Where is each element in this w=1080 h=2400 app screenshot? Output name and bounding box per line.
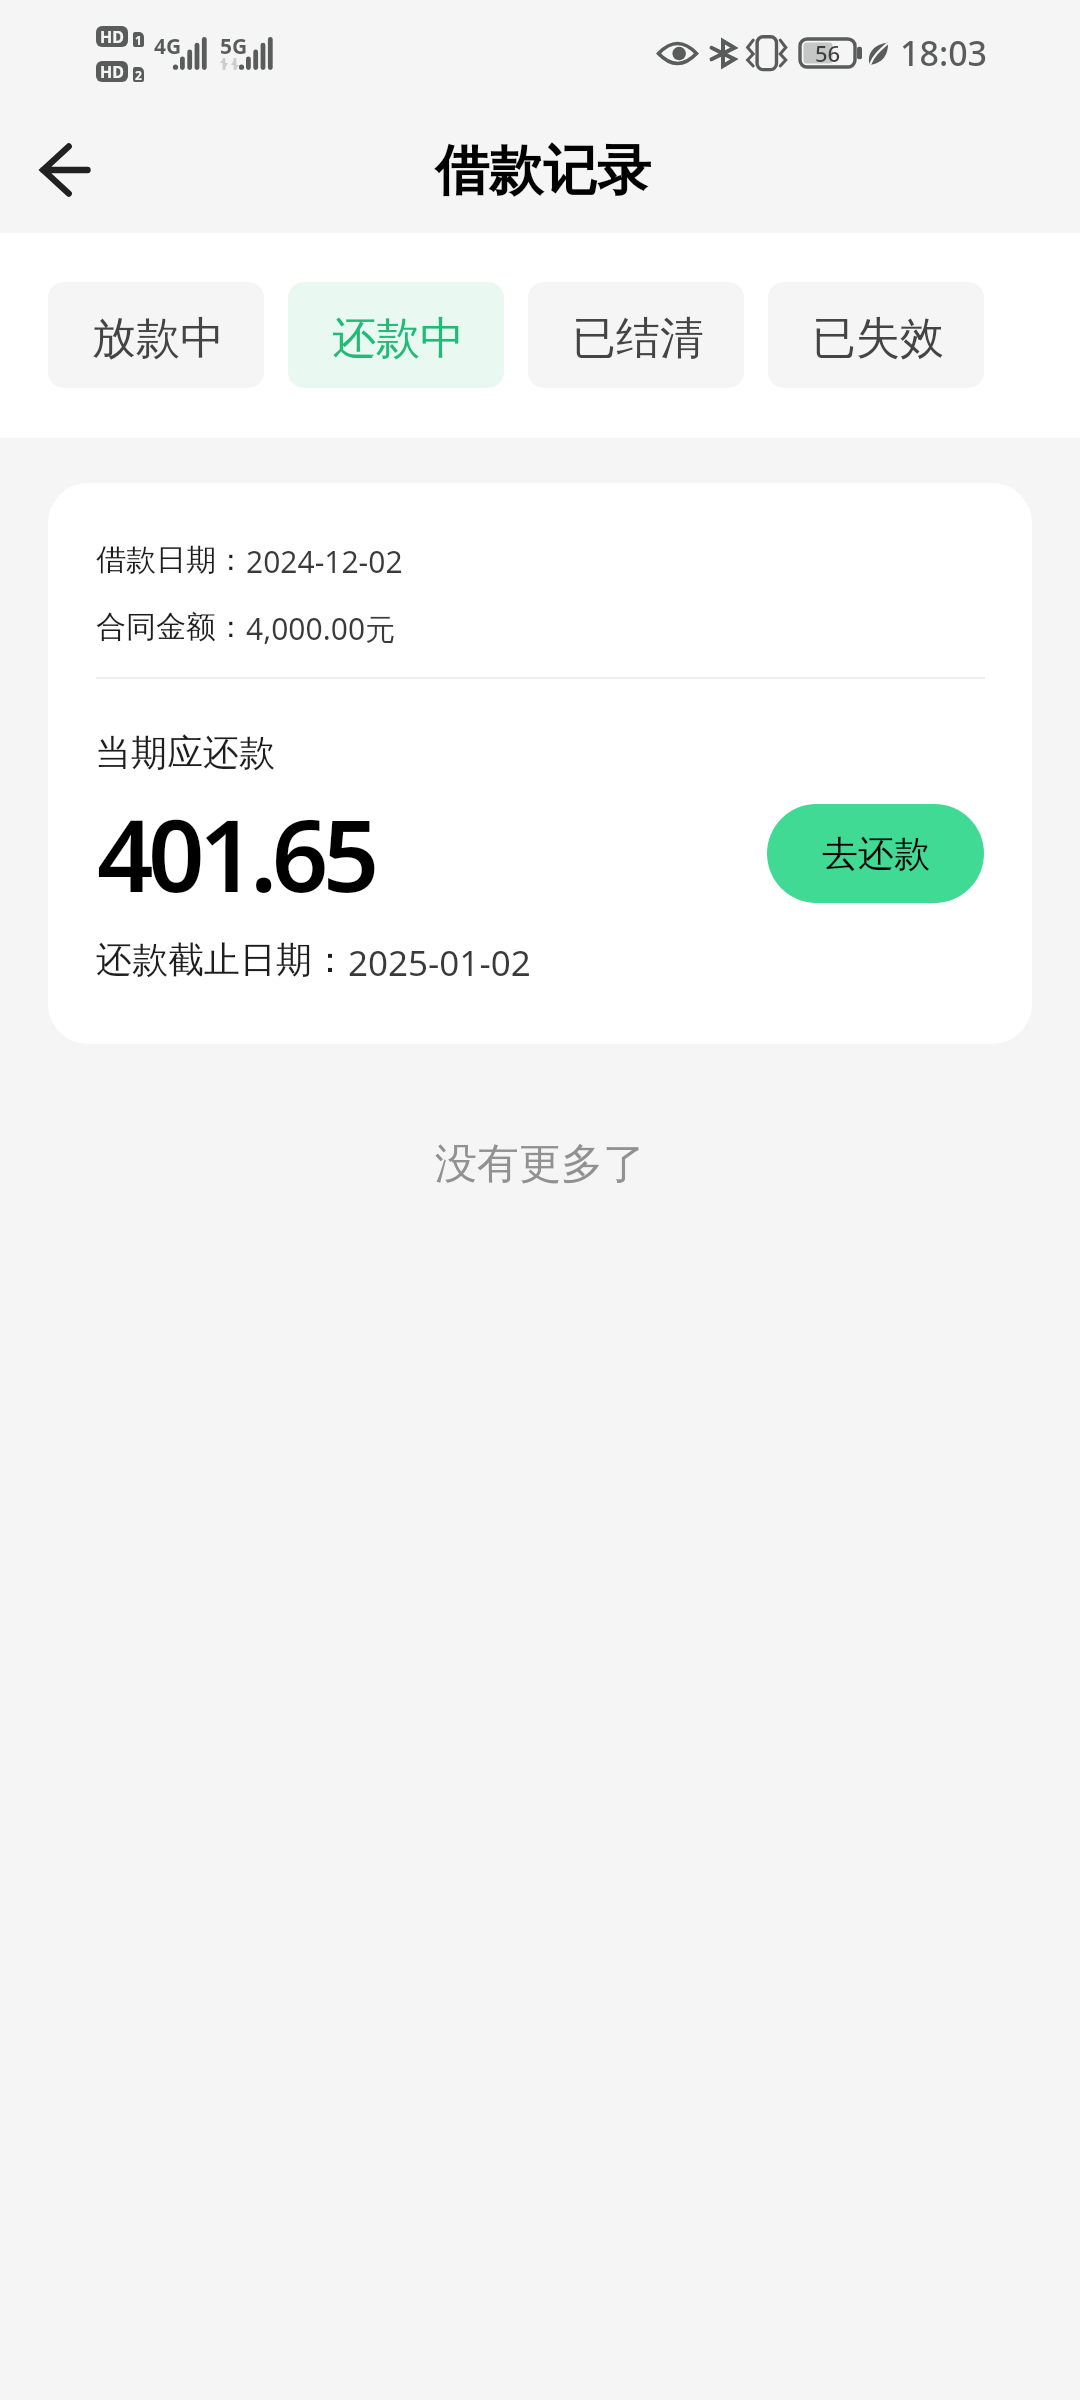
staticText: 2 <box>135 67 142 82</box>
staticText: HD <box>100 61 124 82</box>
staticText: 放款中 <box>92 311 224 366</box>
button[interactable]: 放款中 <box>48 282 264 388</box>
staticText: 已失效 <box>812 311 944 366</box>
staticText: 2024-12-02 <box>246 541 403 582</box>
staticText: 4G <box>154 32 182 61</box>
staticText: 1 <box>135 32 142 47</box>
staticText: 还款截止日期： <box>96 937 348 982</box>
staticText: 去还款 <box>822 831 930 876</box>
staticText: 已结清 <box>572 311 704 366</box>
staticText: 借款记录 <box>435 137 651 205</box>
staticText: HD <box>100 26 124 47</box>
staticText: 2025-01-02 <box>348 939 531 987</box>
button[interactable]: 去还款 <box>767 804 984 903</box>
staticText: 401.65 <box>97 786 374 921</box>
staticText: 借款日期： <box>96 541 246 579</box>
button[interactable]: 已结清 <box>528 282 744 388</box>
staticText: 18:03 <box>900 30 988 76</box>
staticText: 合同金额： <box>96 608 246 646</box>
staticText: 4,000.00元 <box>246 608 396 649</box>
button[interactable]: 还款中 <box>288 282 504 388</box>
button[interactable]: Back <box>0 117 126 223</box>
staticText: 56 <box>815 38 841 66</box>
staticText: 5G <box>220 32 248 61</box>
staticText: 没有更多了 <box>0 1138 1080 1191</box>
staticText: 当期应还款 <box>95 730 275 775</box>
button[interactable]: 借款日期： <box>48 483 1032 1044</box>
button[interactable]: 已失效 <box>768 282 984 388</box>
staticText: 还款中 <box>332 311 464 366</box>
